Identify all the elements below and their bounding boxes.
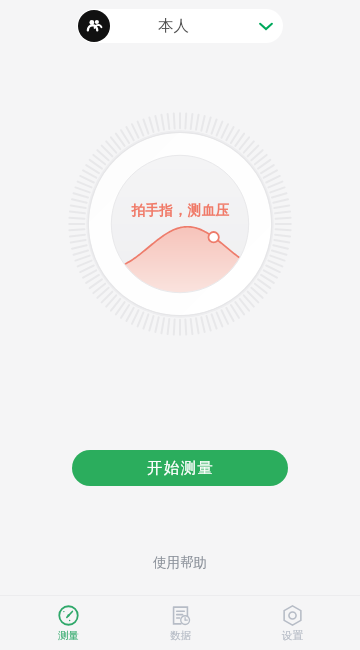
staticText: 开始测量 [147, 458, 214, 478]
staticText: 拍手指，测血压 [131, 202, 230, 219]
staticText: 本人 [158, 16, 189, 36]
staticText: 测量 [58, 629, 79, 642]
button[interactable]: 开始测量 [72, 450, 288, 486]
staticText: 设置 [282, 629, 303, 642]
button[interactable]: 测量 [24, 601, 112, 646]
staticText: 数据 [170, 629, 191, 642]
button[interactable]: 展开选择用户 [249, 9, 283, 43]
button[interactable]: 设置 [248, 601, 336, 646]
button[interactable]: 使用帮助 [141, 548, 219, 577]
staticText: 使用帮助 [153, 554, 207, 571]
button[interactable]: 本人 [77, 9, 283, 43]
button[interactable]: 数据 [136, 601, 224, 646]
